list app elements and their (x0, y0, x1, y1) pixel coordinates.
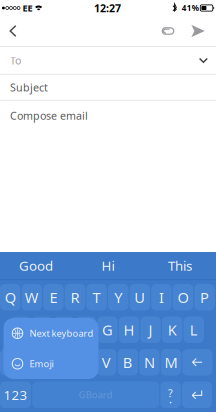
staticText: S (39, 320, 47, 339)
button[interactable]: Shift (0, 349, 30, 375)
button[interactable]: Hi (72, 252, 144, 279)
button[interactable]: I (151, 284, 172, 310)
button[interactable]: Back (2, 16, 24, 46)
staticText: W (25, 287, 39, 307)
button[interactable]: S (32, 316, 53, 343)
button[interactable]: Good (0, 252, 72, 279)
staticText: Y (114, 287, 122, 307)
staticText: G (102, 320, 113, 339)
button[interactable]: P (194, 284, 215, 310)
staticText: To (10, 53, 21, 67)
button[interactable]: O (173, 284, 193, 310)
button[interactable]: U (130, 284, 150, 310)
button[interactable]: Backspace (182, 349, 212, 375)
staticText: K (168, 320, 177, 339)
button[interactable]: Period (160, 381, 181, 408)
staticText: Z (37, 352, 45, 372)
staticText: Emoji (29, 358, 53, 370)
staticText: T (93, 287, 101, 307)
button[interactable]: 123 (0, 381, 31, 408)
staticText: H (123, 320, 134, 339)
staticText: U (134, 287, 145, 307)
staticText: Good (19, 257, 53, 274)
button[interactable]: This (144, 252, 216, 279)
button[interactable]: A (11, 316, 31, 343)
staticText: V (102, 352, 111, 372)
button[interactable]: X (53, 349, 73, 375)
staticText: B (123, 352, 133, 372)
button[interactable]: Space (32, 381, 159, 408)
staticText: D (59, 320, 70, 339)
button[interactable]: N (139, 349, 160, 375)
button[interactable]: Z (31, 349, 52, 375)
button[interactable]: M (161, 349, 181, 375)
staticText: EE (22, 2, 32, 14)
staticText: L (190, 320, 198, 339)
staticText: N (144, 352, 155, 372)
staticText: Q (5, 287, 16, 307)
staticText: P (200, 287, 209, 307)
staticText: Hi (101, 257, 114, 274)
staticText: Compose email (10, 109, 88, 123)
staticText: E (49, 287, 57, 307)
button[interactable]: Subject (0, 75, 216, 100)
button[interactable]: F (76, 316, 96, 343)
staticText: M (164, 352, 177, 372)
staticText: J (149, 320, 153, 339)
button[interactable]: L (184, 316, 204, 343)
staticText: I (159, 287, 164, 307)
button[interactable]: G (97, 316, 118, 343)
button[interactable]: V (96, 349, 116, 375)
staticText: Subject (10, 80, 48, 94)
button[interactable]: K (162, 316, 182, 343)
button[interactable]: Q (0, 284, 20, 310)
staticText: 41% (182, 3, 199, 13)
staticText: R (70, 287, 79, 307)
button[interactable]: W (22, 284, 42, 310)
button[interactable]: H (119, 316, 139, 343)
button[interactable]: To (0, 47, 216, 74)
button[interactable]: Attach file (153, 16, 183, 46)
staticText: 123 (3, 386, 27, 404)
staticText: F (82, 320, 90, 339)
button[interactable]: D (54, 316, 74, 343)
button[interactable]: E (43, 284, 64, 310)
staticText: Next keyboard (29, 327, 93, 339)
staticText: This (168, 257, 192, 274)
button[interactable]: Compose email (0, 101, 216, 131)
staticText: O (177, 287, 188, 307)
button[interactable]: Send (183, 16, 213, 46)
staticText: A (16, 320, 25, 339)
staticText: GBoard (79, 389, 113, 401)
button[interactable]: Return (182, 381, 212, 408)
button[interactable]: R (65, 284, 85, 310)
staticText: ? (168, 386, 173, 400)
button[interactable]: B (118, 349, 138, 375)
button[interactable]: T (86, 284, 107, 310)
button[interactable]: Y (108, 284, 128, 310)
button[interactable]: J (140, 316, 161, 343)
staticText: 12:27 (94, 1, 121, 15)
button[interactable]: Next keyboard (3, 318, 98, 348)
button[interactable]: Emoji (3, 348, 98, 379)
